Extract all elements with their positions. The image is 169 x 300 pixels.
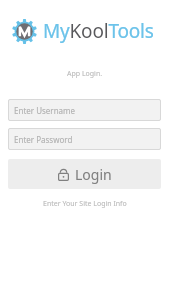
button[interactable]: Login — [8, 159, 161, 189]
staticText: Enter Password — [14, 134, 73, 145]
staticText: Login — [75, 165, 112, 184]
button[interactable]: Enter Password — [8, 128, 161, 150]
staticText: Enter Your Site Login Info — [43, 199, 127, 209]
staticText: App Login. — [67, 69, 103, 79]
staticText: MyKoolTools — [43, 18, 154, 44]
other: MyKoolTools logo — [12, 19, 37, 44]
button[interactable]: Enter Username — [8, 99, 161, 121]
staticText: Enter Username — [14, 105, 76, 116]
